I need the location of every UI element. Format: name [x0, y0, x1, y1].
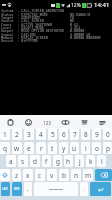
- button[interactable]: Handwriting: [59, 116, 71, 129]
- button[interactable]: c: [35, 169, 45, 181]
- staticText: 5: [51, 130, 55, 139]
- staticText: ND: [70, 18, 75, 23]
- staticText: Device : 0xFFFF00: [1, 38, 38, 43]
- staticText: d: [33, 157, 37, 166]
- button[interactable]: 2: [12, 128, 22, 140]
- staticText: 12%: [71, 2, 81, 9]
- button[interactable]: 8: [81, 128, 90, 140]
- staticText: 4.00000 kB: [70, 32, 91, 37]
- button[interactable]: m: [83, 169, 93, 181]
- button[interactable]: Theme: [78, 116, 90, 129]
- button[interactable]: v: [47, 169, 57, 181]
- staticText: 7: [73, 130, 77, 139]
- staticText: k: [89, 157, 93, 166]
- staticText: c: [38, 171, 42, 180]
- button[interactable]: l: [97, 155, 106, 167]
- button[interactable]: 1: [0, 128, 10, 140]
- staticText: p: [106, 144, 110, 153]
- button[interactable]: More options: [96, 116, 108, 129]
- button[interactable]: p: [103, 142, 112, 154]
- staticText: a: [9, 157, 13, 166]
- staticText: EN: [14, 186, 20, 192]
- staticText: ,: [27, 185, 29, 193]
- button[interactable]: d: [30, 155, 40, 167]
- staticText: q: [3, 144, 7, 153]
- staticText: 6: [62, 130, 66, 139]
- staticText: s: [21, 157, 25, 166]
- button[interactable]: .: [80, 182, 88, 196]
- button[interactable]: Emoji: [22, 116, 34, 129]
- button[interactable]: r: [36, 142, 46, 154]
- staticText: l: [101, 157, 103, 166]
- staticText: z: [15, 171, 19, 180]
- staticText: 0.62: [70, 22, 79, 27]
- staticText: 9: [95, 130, 99, 139]
- staticText: w: [14, 144, 20, 153]
- staticText: 0: [106, 130, 110, 139]
- button[interactable]: y: [59, 142, 68, 154]
- button[interactable]: h: [64, 155, 73, 167]
- button[interactable]: Clipboard: [4, 116, 16, 129]
- button[interactable]: z: [12, 169, 21, 181]
- button[interactable]: w: [12, 142, 22, 154]
- staticText: u: [72, 144, 77, 153]
- staticText: f: [45, 157, 48, 166]
- button[interactable]: n: [71, 169, 81, 181]
- button[interactable]: e: [24, 142, 34, 154]
- button[interactable]: o: [92, 142, 101, 154]
- button[interactable]: 9: [92, 128, 101, 140]
- button[interactable]: b: [59, 169, 69, 181]
- button[interactable]: 3: [24, 128, 34, 140]
- button[interactable]: Backspace: [95, 169, 112, 181]
- staticText: n: [74, 171, 79, 180]
- staticText: 14:41: [94, 1, 110, 9]
- staticText: e: [27, 144, 31, 153]
- staticText: b: [62, 171, 66, 180]
- staticText: Memory : REPLAY_SCREEN: [1, 35, 48, 40]
- staticText: Output : MODE OPTION DESTROYED: [1, 28, 65, 33]
- staticText: r: [40, 144, 43, 153]
- button[interactable]: 0: [103, 128, 112, 140]
- staticText: Level : OBJECT_MODE: [1, 25, 44, 30]
- button[interactable]: j: [75, 155, 84, 167]
- button[interactable]: u: [70, 142, 79, 154]
- staticText: FD: [70, 15, 75, 20]
- button[interactable]: k: [86, 155, 95, 167]
- button[interactable]: Enter: [90, 182, 111, 196]
- button[interactable]: s: [18, 155, 28, 167]
- button[interactable]: 7: [70, 128, 79, 140]
- button[interactable]: 6: [59, 128, 68, 140]
- staticText: o: [95, 144, 99, 153]
- button[interactable]: g: [53, 155, 62, 167]
- staticText: 123: [43, 120, 51, 126]
- staticText: 1: [3, 130, 7, 139]
- button[interactable]: t: [48, 142, 57, 154]
- staticText: 4: [39, 130, 43, 139]
- staticText: i: [85, 144, 87, 153]
- button[interactable]: Shift: [0, 169, 10, 181]
- staticText: .: [83, 185, 85, 193]
- staticText: m: [85, 171, 92, 180]
- button[interactable]: Symbols: [1, 182, 10, 196]
- button[interactable]: ,: [24, 182, 32, 196]
- button[interactable]: i: [81, 142, 90, 154]
- staticText: g: [56, 157, 60, 166]
- staticText: !#1: [2, 186, 9, 192]
- staticText: v: [50, 171, 54, 180]
- button[interactable]: 5: [48, 128, 57, 140]
- button[interactable]: Numbers: [41, 116, 53, 129]
- staticText: 3: [27, 130, 31, 139]
- button[interactable]: 4: [36, 128, 46, 140]
- button[interactable]: x: [23, 169, 33, 181]
- button[interactable]: f: [42, 155, 51, 167]
- staticText: y: [62, 144, 66, 153]
- button[interactable]: Space: [34, 182, 78, 196]
- button[interactable]: a: [6, 155, 16, 167]
- staticText: Source : CALL_SCREEN: [1, 18, 44, 23]
- button[interactable]: q: [0, 142, 10, 154]
- staticText: 2: [15, 130, 19, 139]
- staticText: Status : EXPECTED_MODE: [1, 12, 48, 17]
- staticText: t: [51, 144, 54, 153]
- staticText: j: [79, 157, 81, 166]
- button[interactable]: Language: [12, 182, 22, 196]
